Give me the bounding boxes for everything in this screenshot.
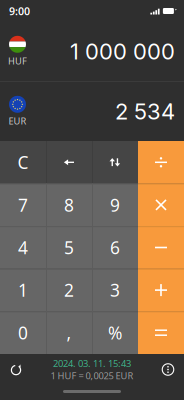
staticText: % [108,321,122,344]
button[interactable]: Swap currencies [92,141,138,184]
button[interactable]: Subtract [138,226,184,269]
button[interactable]: 7 [0,184,46,226]
button[interactable]: , [46,311,92,354]
button[interactable]: EUR [0,82,184,141]
staticText: 2024. 03. 11. 15:43 [53,357,131,369]
button[interactable]: 4 [0,226,46,269]
staticText: 2 [64,279,74,302]
staticText: 4 [18,236,28,259]
button[interactable]: Backspace [46,141,92,184]
button[interactable]: Multiply [138,184,184,226]
staticText: 1 000 000 [70,38,175,65]
button[interactable]: 1 [0,269,46,311]
button[interactable]: Divide [138,141,184,184]
staticText: 2 534 [115,98,175,125]
staticText: 0 [18,321,28,344]
button[interactable]: % [92,311,138,354]
staticText: 1 [18,279,28,302]
button[interactable]: Equals [138,311,184,354]
staticText: HUF [8,55,27,67]
staticText: C [17,151,28,174]
staticText: 7 [18,193,28,216]
staticText: , [66,321,71,344]
button[interactable]: HUF [0,22,184,81]
staticText: 9 [110,193,120,216]
staticText: 6 [110,236,120,259]
button[interactable]: More options [153,354,183,385]
staticText: 1 HUF = 0,0025 EUR [50,369,133,382]
button[interactable]: Refresh rates [1,354,31,385]
button[interactable]: 8 [46,184,92,226]
staticText: 3 [110,279,120,302]
button[interactable]: 2 [46,269,92,311]
button[interactable]: 0 [0,311,46,354]
button[interactable]: 6 [92,226,138,269]
button[interactable]: 9 [92,184,138,226]
staticText: 5 [64,236,74,259]
staticText: 9:00 [9,4,30,18]
button[interactable]: 3 [92,269,138,311]
button[interactable]: C [0,141,46,184]
staticText: 8 [64,193,74,216]
button[interactable]: 5 [46,226,92,269]
button[interactable]: Add [138,269,184,311]
staticText: EUR [8,115,26,127]
